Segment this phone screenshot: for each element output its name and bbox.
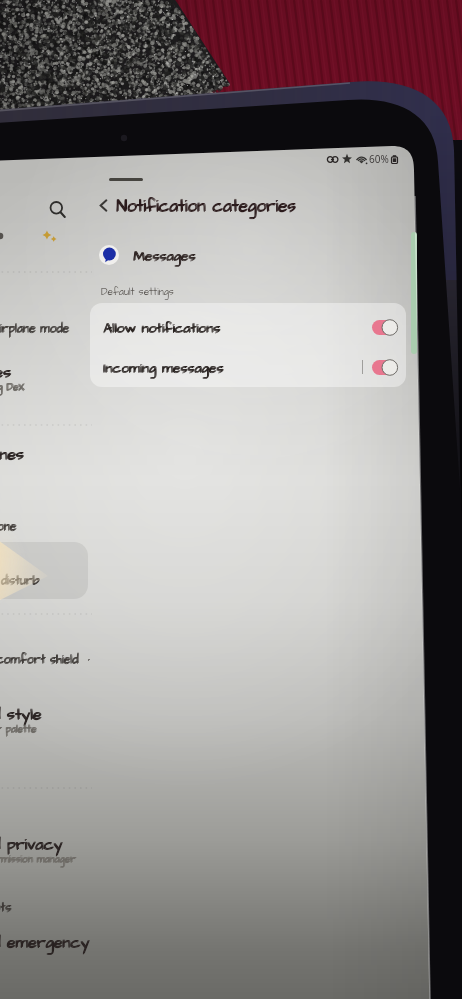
staticText: tone	[0, 518, 17, 535]
staticText: sts	[0, 900, 11, 917]
button[interactable]: sts	[0, 899, 11, 916]
staticText: comfort shield ·	[0, 651, 91, 668]
staticText: ng DeX	[0, 380, 26, 394]
staticText: Messages	[133, 246, 196, 265]
staticText: or palette	[0, 723, 37, 737]
staticText: Allow notifications	[104, 318, 221, 337]
button[interactable]: es	[0, 361, 11, 383]
staticText: tines	[0, 443, 24, 465]
staticText: Airplane mode	[0, 321, 69, 338]
button[interactable]: d privacy	[0, 833, 63, 855]
staticText: ng DeX	[0, 380, 25, 394]
staticText: d privacy	[0, 833, 63, 855]
button[interactable]	[372, 360, 397, 375]
staticText: Airplane mode	[0, 320, 69, 337]
staticText: Airplane mode	[0, 320, 70, 337]
staticText: Messages	[134, 246, 197, 265]
staticText: Messages	[133, 247, 196, 266]
staticText: ermission manager	[0, 852, 76, 866]
staticText: comfort shield ·	[0, 651, 90, 668]
staticText: or palette	[0, 722, 37, 736]
staticText: ng DeX	[0, 381, 25, 395]
staticText: tone	[0, 519, 17, 536]
staticText: sts	[0, 899, 12, 916]
button[interactable]: d style	[0, 703, 42, 725]
staticText: Incoming messages	[103, 359, 224, 378]
staticText: Notification categories	[117, 194, 297, 218]
staticText: sts	[0, 899, 11, 916]
staticText: 60%	[369, 152, 389, 166]
button[interactable]	[372, 320, 397, 335]
staticText: es	[0, 362, 11, 384]
staticText: tines	[0, 444, 24, 466]
staticText: d privacy	[0, 834, 63, 856]
staticText: Incoming messages	[103, 358, 224, 377]
staticText: Incoming messages	[104, 358, 225, 377]
staticText: d style	[0, 703, 42, 725]
staticText: Allow notifications	[103, 318, 220, 337]
button[interactable]: Search	[45, 197, 69, 221]
staticText: d style	[0, 704, 42, 726]
button[interactable]: tines	[0, 443, 24, 465]
staticText: tone	[0, 518, 18, 535]
button[interactable]: Back	[92, 194, 114, 216]
button[interactable]: AI assistant	[40, 228, 59, 247]
staticText: Allow notifications	[103, 319, 220, 338]
staticText: d emergency	[0, 932, 90, 954]
staticText: d emergency	[0, 931, 90, 953]
button[interactable]: Allow notifications	[90, 308, 406, 346]
staticText: es	[0, 361, 12, 383]
button[interactable]: tone	[0, 518, 17, 535]
staticText: Notification categories	[116, 194, 296, 218]
staticText: es	[0, 361, 11, 383]
button[interactable]	[0, 542, 88, 599]
staticText: Notification categories	[116, 195, 296, 219]
button[interactable]: Notification categories	[116, 194, 296, 218]
button[interactable]: Airplane mode	[0, 320, 69, 337]
staticText: ermission manager	[0, 853, 76, 867]
button[interactable]: Incoming messages	[90, 348, 406, 386]
staticText: Default settings	[101, 285, 174, 299]
button[interactable]: comfort shield ·	[0, 651, 90, 668]
staticText: comfort shield ·	[0, 652, 90, 669]
button[interactable]: t disturb	[0, 572, 39, 589]
staticText: d style	[0, 703, 43, 725]
staticText: ermission manager	[0, 852, 77, 866]
staticText: d privacy	[0, 833, 64, 855]
button[interactable]: Messages	[99, 241, 196, 269]
staticText: or palette	[0, 722, 38, 736]
staticText: t disturb	[0, 573, 39, 590]
staticText: d emergency	[0, 931, 91, 953]
staticText: t disturb	[0, 572, 40, 589]
button[interactable]: d emergency	[0, 931, 90, 953]
staticText: t disturb	[0, 572, 39, 589]
staticText: tines	[0, 443, 25, 465]
